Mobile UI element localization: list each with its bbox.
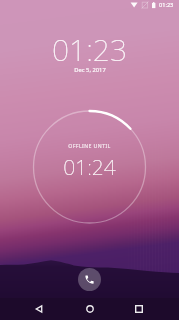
- staticText: OFFLINE UNTIL: [68, 142, 111, 149]
- staticText: 01:24: [63, 153, 116, 182]
- staticText: 01:23: [52, 29, 127, 70]
- button[interactable]: Recent apps: [116, 298, 162, 320]
- staticText: 01:23: [159, 1, 174, 9]
- button[interactable]: Home: [67, 298, 113, 320]
- button[interactable]: Back: [16, 298, 62, 320]
- button[interactable]: Emergency call: [78, 268, 101, 291]
- staticText: Dec 5, 2017: [74, 66, 106, 74]
